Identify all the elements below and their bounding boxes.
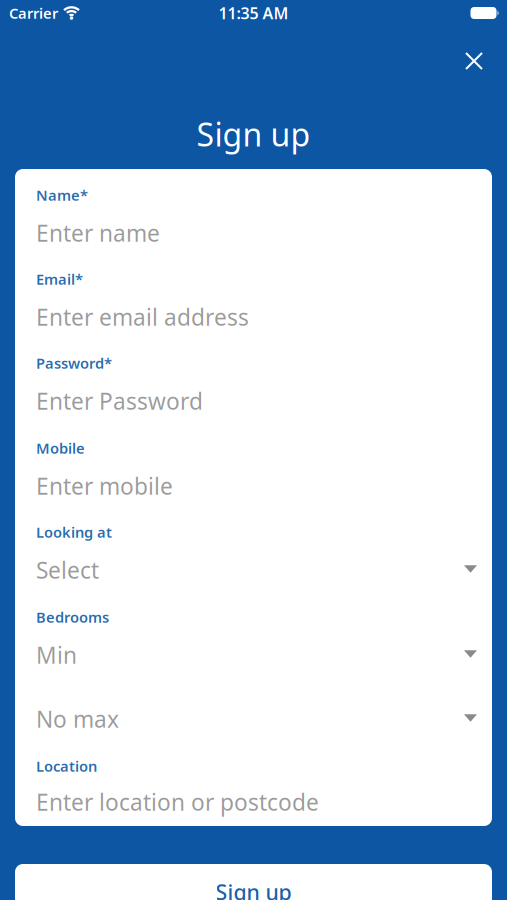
- staticText: Name*: [36, 185, 88, 205]
- button[interactable]: Select: [36, 556, 477, 584]
- button[interactable]: Enter mobile: [36, 472, 477, 500]
- staticText: No max: [36, 704, 119, 734]
- button[interactable]: Close: [452, 39, 496, 83]
- staticText: 11:35 AM: [218, 2, 288, 24]
- staticText: Password*: [36, 353, 112, 373]
- staticText: Sign up: [215, 878, 291, 900]
- button[interactable]: Enter Password: [36, 387, 477, 415]
- staticText: Select: [36, 555, 99, 585]
- staticText: Mobile: [36, 438, 85, 458]
- staticText: Enter mobile: [36, 471, 173, 501]
- staticText: Enter Password: [36, 386, 203, 416]
- button[interactable]: No max: [36, 705, 477, 733]
- staticText: Enter email address: [36, 302, 249, 332]
- staticText: Min: [36, 640, 77, 670]
- staticText: Carrier: [9, 3, 58, 23]
- staticText: Location: [36, 756, 97, 776]
- staticText: Sign up: [196, 113, 310, 155]
- button[interactable]: Enter email address: [36, 303, 477, 331]
- staticText: Enter location or postcode: [36, 787, 319, 817]
- staticText: Bedrooms: [36, 607, 109, 627]
- staticText: Looking at: [36, 522, 112, 542]
- button[interactable]: Enter location or postcode: [36, 788, 477, 816]
- staticText: Enter name: [36, 218, 160, 248]
- button[interactable]: Enter name: [36, 219, 477, 247]
- button[interactable]: Min: [36, 641, 477, 669]
- staticText: Email*: [36, 269, 83, 289]
- button[interactable]: Sign up: [15, 864, 492, 900]
